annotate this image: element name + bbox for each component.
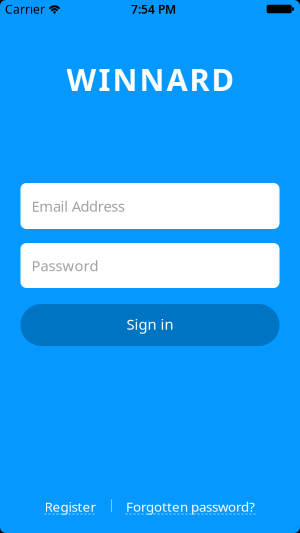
button[interactable]: Forgotten password?: [125, 498, 255, 514]
staticText: Email Address: [31, 196, 125, 216]
staticText: Forgotten password?: [126, 498, 255, 515]
staticText: WINNARD: [66, 59, 233, 99]
button[interactable]: Register: [44, 498, 96, 514]
staticText: Password: [31, 256, 98, 275]
button[interactable]: Password: [20, 243, 279, 288]
staticText: Register: [44, 498, 96, 515]
button[interactable]: Sign in: [20, 304, 279, 346]
button[interactable]: Email Address: [20, 183, 279, 229]
staticText: 7:54 PM: [131, 1, 176, 17]
staticText: |: [107, 495, 114, 513]
staticText: Sign in: [126, 314, 173, 334]
staticText: Carrier: [5, 1, 45, 17]
